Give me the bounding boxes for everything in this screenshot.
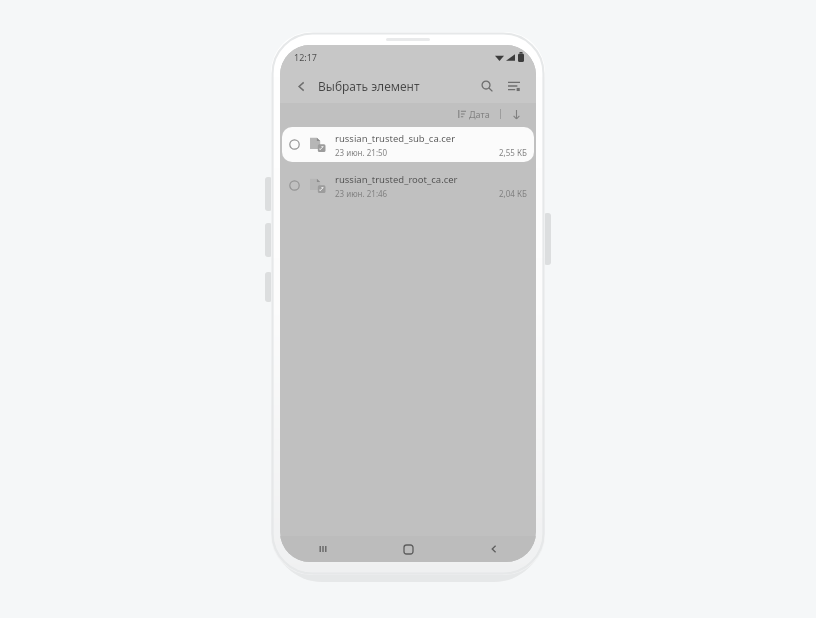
staticText: 2,04 КБ <box>499 188 527 199</box>
button[interactable]: Дата <box>455 106 493 122</box>
button[interactable]: More options <box>502 74 526 98</box>
staticText: 23 июн. 21:50 <box>335 147 388 158</box>
staticText: Дата <box>469 108 490 120</box>
button[interactable]: russian_trusted_root_ca.cer <box>282 168 534 203</box>
staticText: russian_trusted_root_ca.cer <box>335 173 458 186</box>
button[interactable]: Sort direction <box>508 106 524 122</box>
staticText: 2,55 КБ <box>499 147 527 158</box>
button[interactable]: Home <box>366 536 451 562</box>
button[interactable]: Search <box>475 74 499 98</box>
button[interactable]: Recent apps <box>280 536 366 562</box>
staticText: 23 июн. 21:46 <box>335 188 388 199</box>
button[interactable]: Back <box>451 536 536 562</box>
button[interactable]: Back <box>290 75 312 97</box>
staticText: russian_trusted_sub_ca.cer <box>335 132 456 145</box>
staticText: 12:17 <box>294 51 318 63</box>
staticText: Выбрать элемент <box>318 78 475 94</box>
button[interactable]: russian_trusted_sub_ca.cer <box>282 127 534 162</box>
